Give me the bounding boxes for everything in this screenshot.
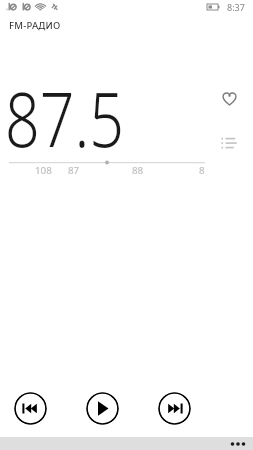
button[interactable]: Station list [218, 131, 240, 153]
staticText: FM-РАДИО [9, 19, 61, 32]
button[interactable]: Next station [158, 392, 191, 425]
staticText: 8:37 [227, 1, 245, 13]
staticText: 87 [68, 164, 80, 177]
staticText: 87.5 [5, 66, 124, 170]
staticText: 108 [35, 164, 52, 177]
button[interactable]: Play [86, 392, 119, 425]
staticText: 88 [132, 164, 144, 177]
button[interactable]: Tuning scale [0, 152, 253, 180]
staticText: 8 [199, 164, 205, 177]
button[interactable]: Previous station [14, 392, 47, 425]
button[interactable]: Add to favorites [218, 88, 240, 110]
button[interactable]: More options [223, 437, 253, 450]
